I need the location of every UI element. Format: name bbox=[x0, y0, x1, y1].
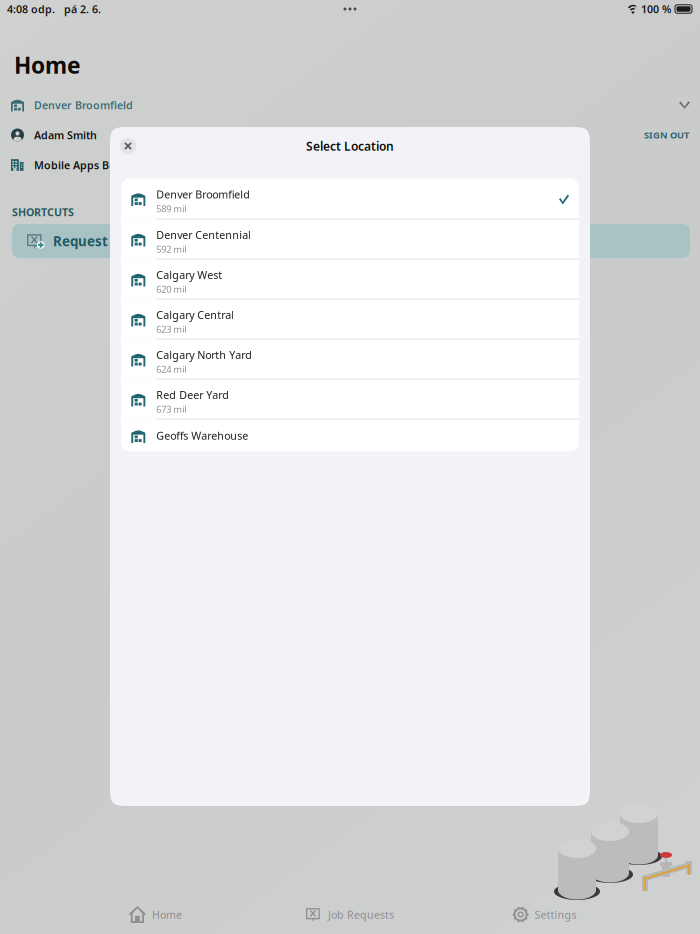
button[interactable]: Calgary North Yard bbox=[121, 339, 579, 378]
staticText: Denver Centennial bbox=[156, 228, 251, 242]
staticText: 623 mil bbox=[156, 323, 186, 335]
staticText: 592 mil bbox=[156, 243, 186, 255]
staticText: 624 mil bbox=[156, 363, 186, 375]
staticText: 673 mil bbox=[156, 403, 186, 415]
button[interactable]: Close bbox=[113, 133, 143, 159]
button[interactable]: Red Deer Yard bbox=[121, 379, 579, 418]
staticText: 620 mil bbox=[156, 283, 186, 295]
button[interactable]: Calgary Central bbox=[121, 299, 579, 338]
staticText: 4:08 odp. pá 2. 6. bbox=[7, 2, 101, 16]
staticText: Home bbox=[152, 907, 182, 922]
staticText: Request bbox=[44, 232, 108, 250]
button[interactable]: Settings bbox=[447, 899, 642, 929]
button[interactable]: Home bbox=[58, 899, 253, 929]
staticText: Geoffs Warehouse bbox=[156, 428, 248, 443]
button[interactable]: Request bbox=[0, 224, 700, 258]
staticText: Mobile Apps Buyer bbox=[34, 158, 133, 172]
staticText: Adam Smith bbox=[34, 128, 97, 142]
staticText: SHORTCUTS bbox=[12, 205, 74, 219]
button[interactable]: Calgary West bbox=[121, 259, 579, 298]
staticText: Select Location bbox=[306, 138, 394, 154]
staticText: Denver Broomfield bbox=[156, 187, 250, 201]
button[interactable]: Geoffs Warehouse bbox=[121, 419, 579, 451]
staticText: Calgary North Yard bbox=[156, 348, 252, 362]
staticText: 589 mil bbox=[156, 202, 186, 215]
staticText: Red Deer Yard bbox=[156, 388, 229, 402]
staticText: SIGN OUT bbox=[644, 129, 689, 141]
staticText: Home bbox=[14, 50, 81, 80]
staticText: Denver Broomfield bbox=[34, 98, 133, 112]
staticText: Calgary West bbox=[156, 268, 222, 282]
staticText: Calgary Central bbox=[156, 308, 234, 322]
button[interactable]: SIGN OUT bbox=[640, 126, 693, 144]
button[interactable]: Job Requests bbox=[253, 899, 447, 929]
button[interactable]: Denver Centennial bbox=[121, 219, 579, 258]
button[interactable]: Denver Broomfield bbox=[121, 178, 579, 218]
staticText: 100 % bbox=[638, 2, 671, 16]
staticText: Settings bbox=[535, 907, 577, 922]
staticText: Job Requests bbox=[328, 907, 394, 922]
